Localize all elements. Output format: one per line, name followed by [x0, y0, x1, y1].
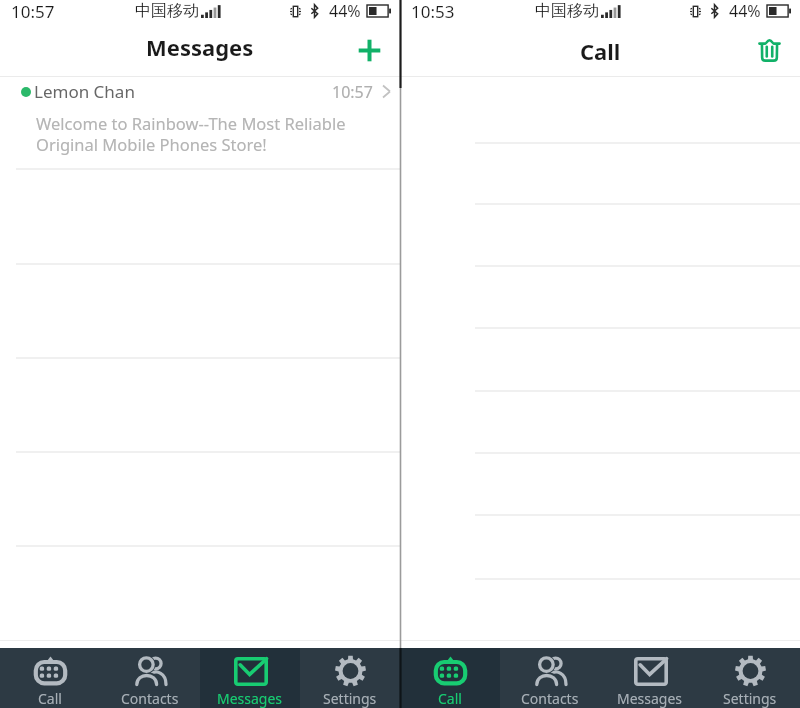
staticText: Call — [580, 36, 621, 66]
staticText: 44% — [729, 0, 761, 22]
button[interactable]: New message — [352, 33, 386, 67]
button[interactable]: Settings — [700, 648, 800, 708]
button[interactable]: Contacts — [100, 648, 200, 708]
button[interactable]: Messages — [600, 648, 700, 708]
staticText: Messages — [146, 32, 254, 62]
staticText: Call — [438, 689, 462, 708]
staticText: Contacts — [521, 689, 579, 708]
button[interactable]: Messages — [200, 648, 300, 708]
staticText: 中国移动 — [535, 1, 599, 21]
button[interactable]: Lemon Chan — [0, 77, 400, 156]
staticText: 44% — [329, 0, 361, 22]
button[interactable]: Call — [400, 648, 500, 708]
staticText: Messages — [617, 689, 683, 708]
staticText: Contacts — [121, 689, 179, 708]
staticText: Welcome to Rainbow--The Most Reliable Or… — [36, 112, 346, 156]
button[interactable]: Settings — [300, 648, 400, 708]
staticText: Settings — [723, 689, 777, 708]
button[interactable]: Call — [0, 648, 100, 708]
staticText: 10:57 — [11, 0, 55, 22]
staticText: Messages — [217, 689, 283, 708]
staticText: Lemon Chan — [34, 80, 135, 103]
staticText: Call — [38, 689, 62, 708]
button[interactable]: Delete — [752, 33, 786, 67]
button[interactable]: Contacts — [500, 648, 600, 708]
staticText: 10:57 — [332, 81, 373, 103]
staticText: 中国移动 — [135, 1, 199, 21]
staticText: Settings — [323, 689, 377, 708]
staticText: 10:53 — [411, 0, 455, 22]
